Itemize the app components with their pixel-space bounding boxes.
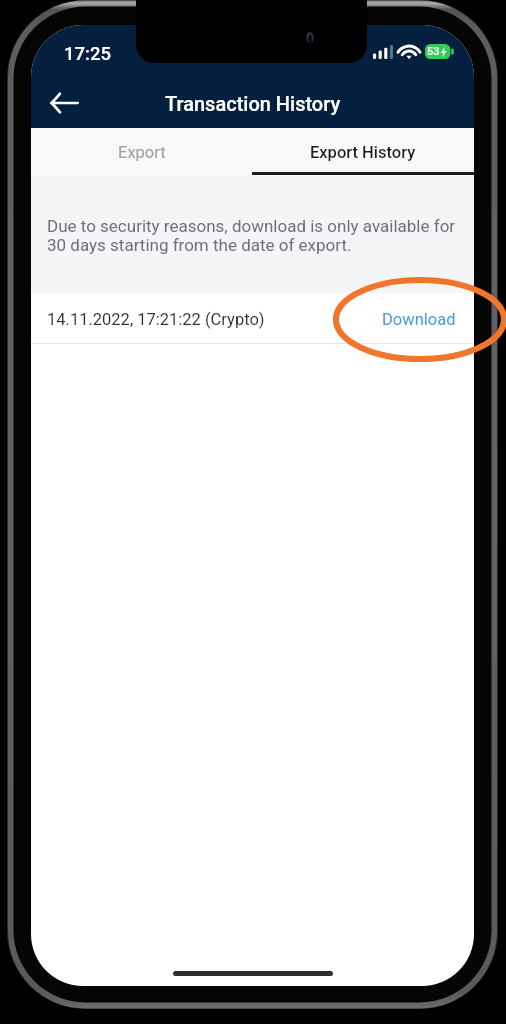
staticText: Export History bbox=[310, 143, 416, 162]
button[interactable]: Export History bbox=[252, 128, 474, 176]
button[interactable]: 14.11.2022, 17:21:22 (Crypto) bbox=[31, 295, 474, 344]
button[interactable]: Back bbox=[40, 81, 88, 125]
staticText: 53 bbox=[427, 45, 440, 58]
staticText: Export bbox=[118, 143, 166, 162]
staticText: Due to security reasons, download is onl… bbox=[47, 216, 456, 255]
staticText: 14.11.2022, 17:21:22 (Crypto) bbox=[47, 310, 265, 329]
button[interactable]: Export bbox=[31, 128, 252, 176]
staticText: 17:25 bbox=[64, 43, 111, 65]
staticText: Transaction History bbox=[165, 92, 341, 115]
staticText: Download bbox=[382, 310, 456, 329]
